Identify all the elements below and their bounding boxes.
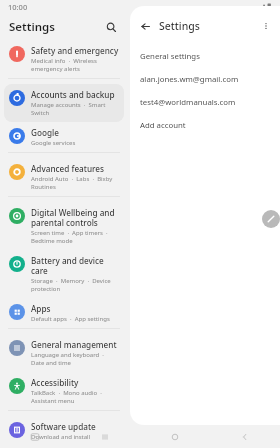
staticText: Accounts and backup [31, 89, 115, 100]
staticText: Accessibility [31, 377, 79, 388]
staticText: Google [31, 127, 59, 138]
button[interactable]: alan.jones.wm@gmail.com [130, 68, 280, 91]
button[interactable]: General management [4, 334, 124, 372]
button[interactable]: test4@worldmanuals.com [130, 91, 280, 114]
staticText: Screen time · App timers · Bedtime mode [31, 229, 120, 245]
button[interactable]: Digital Wellbeing and parental controls [4, 202, 124, 250]
staticText: Settings [159, 19, 200, 33]
staticText: General settings [140, 51, 200, 62]
staticText: Settings [9, 19, 55, 35]
button[interactable]: Advanced features [4, 158, 124, 196]
button[interactable]: Search [102, 18, 120, 36]
staticText: Google services [31, 139, 76, 147]
button[interactable]: Accessibility [4, 372, 124, 410]
staticText: Storage · Memory · Device protection [31, 277, 120, 293]
button[interactable]: screenshot [0, 425, 70, 448]
button[interactable]: Software update [4, 416, 124, 446]
button[interactable]: Apps [4, 298, 124, 328]
button[interactable]: Add account [130, 114, 280, 137]
staticText: alan.jones.wm@gmail.com [140, 74, 239, 85]
staticText: TalkBack · Mono audio · Assistant menu [31, 389, 120, 405]
staticText: test4@worldmanuals.com [140, 97, 236, 108]
button[interactable]: Safety and emergency [4, 40, 124, 78]
button[interactable]: Back [136, 17, 154, 35]
button[interactable]: General settings [130, 45, 280, 68]
staticText: General management [31, 339, 117, 350]
button[interactable]: Edit [262, 210, 280, 228]
staticText: Safety and emergency [31, 45, 119, 56]
button[interactable]: More options [258, 18, 274, 34]
staticText: Add account [140, 120, 186, 131]
staticText: Apps [31, 303, 51, 314]
staticText: Battery and device care [31, 255, 120, 276]
staticText: Manage accounts · Smart Switch [31, 101, 120, 117]
staticText: Language and keyboard · Date and time [31, 351, 120, 367]
staticText: Software update [31, 421, 96, 432]
button[interactable]: Google [4, 122, 124, 152]
button[interactable]: recents [70, 425, 140, 448]
button[interactable]: home [140, 425, 210, 448]
button[interactable]: Accounts and backup [4, 84, 124, 122]
staticText: Download and install [31, 433, 91, 441]
button[interactable]: Battery and device care [4, 250, 124, 298]
staticText: Default apps · App settings [31, 315, 110, 323]
staticText: Digital Wellbeing and parental controls [31, 207, 120, 228]
staticText: Android Auto · Labs · Bixby Routines [31, 175, 120, 191]
staticText: Advanced features [31, 163, 105, 174]
staticText: Medical info · Wireless emergency alerts [31, 57, 120, 73]
staticText: 10:00 [8, 2, 28, 12]
